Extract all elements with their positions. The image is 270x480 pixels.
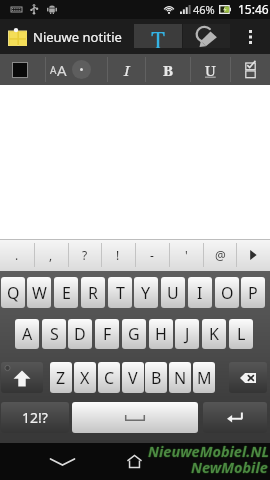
staticText: P	[248, 282, 258, 304]
button[interactable]: T	[108, 277, 132, 308]
button[interactable]: J	[175, 319, 199, 349]
staticText: T	[116, 282, 125, 304]
staticText: L	[237, 323, 246, 345]
button[interactable]: ,	[34, 239, 68, 271]
button[interactable]: O	[215, 277, 239, 308]
button[interactable]: U	[191, 54, 230, 85]
button[interactable]: T	[134, 24, 182, 48]
staticText: @	[215, 247, 226, 263]
staticText: Z	[56, 367, 66, 389]
button[interactable]: Q	[1, 277, 25, 308]
button[interactable]: P	[241, 277, 265, 308]
button[interactable]: F	[95, 319, 119, 349]
staticText: U	[167, 282, 179, 304]
button[interactable]: Enter	[203, 402, 267, 433]
staticText: K	[209, 323, 219, 345]
staticText: X	[80, 367, 90, 389]
button[interactable]: Symbols	[1, 402, 69, 433]
button[interactable]: Shift	[1, 362, 43, 393]
staticText: NewMobile	[191, 456, 268, 476]
button[interactable]: B	[145, 362, 167, 393]
button[interactable]: More symbols	[236, 239, 270, 271]
staticText: B	[163, 60, 174, 80]
button[interactable]: Space	[72, 402, 198, 433]
staticText: ,	[49, 247, 53, 263]
staticText: NieuweMobiel.NL	[147, 441, 268, 461]
button[interactable]: Nieuwe notitie	[8, 19, 128, 54]
button[interactable]: Z	[50, 362, 72, 393]
button[interactable]: H	[149, 319, 173, 349]
button[interactable]: A	[15, 319, 39, 349]
staticText: A	[22, 323, 33, 345]
staticText: F	[103, 323, 112, 345]
staticText: I	[124, 60, 130, 80]
staticText: U	[205, 60, 216, 80]
staticText: B	[151, 367, 162, 389]
staticText: NieuweMobiel.NL	[148, 442, 269, 462]
staticText: NieuweMobiel.NL	[148, 441, 269, 461]
staticText: '	[185, 247, 188, 263]
staticText: J	[185, 323, 190, 345]
button[interactable]: Backspace	[229, 362, 267, 393]
staticText: R	[88, 282, 98, 304]
button[interactable]: D	[68, 319, 92, 349]
button[interactable]: X	[74, 362, 96, 393]
staticText: V	[128, 367, 138, 389]
button[interactable]: G	[122, 319, 146, 349]
button[interactable]: Back	[44, 443, 80, 480]
button[interactable]: W	[27, 277, 51, 308]
button[interactable]: -	[135, 239, 169, 271]
button[interactable]: '	[169, 239, 203, 271]
staticText: O	[221, 282, 234, 304]
staticText: A	[57, 60, 67, 80]
staticText: Nieuwe notitie	[33, 28, 122, 46]
staticText: T	[151, 24, 166, 48]
button[interactable]: U	[161, 277, 185, 308]
staticText: C	[104, 367, 115, 389]
staticText: .	[15, 247, 19, 263]
button[interactable]: K	[202, 319, 226, 349]
button[interactable]: Home	[116, 443, 152, 480]
button[interactable]: S	[42, 319, 66, 349]
button[interactable]: @	[203, 239, 237, 271]
button[interactable]: L	[229, 319, 253, 349]
button[interactable]: M	[193, 362, 215, 393]
staticText: I	[197, 282, 203, 304]
button[interactable]: .	[0, 239, 34, 271]
button[interactable]: C	[98, 362, 120, 393]
staticText: G	[128, 323, 140, 345]
staticText: !	[116, 247, 120, 263]
button[interactable]: E	[54, 277, 78, 308]
button[interactable]: Text size	[46, 54, 107, 85]
staticText: ?	[82, 247, 88, 263]
staticText: 12!?	[22, 408, 48, 427]
staticText: M	[197, 367, 212, 389]
staticText: Y	[141, 282, 151, 304]
button[interactable]: B	[146, 54, 190, 85]
staticText: -	[150, 247, 154, 263]
button[interactable]: V	[122, 362, 144, 393]
button[interactable]: I	[108, 54, 145, 85]
staticText: H	[155, 323, 167, 345]
staticText: A	[50, 63, 57, 77]
button[interactable]: Drawing mode	[183, 24, 230, 48]
staticText: E	[62, 282, 71, 304]
button[interactable]: N	[169, 362, 191, 393]
staticText: NieuweMobiel.NL	[149, 441, 270, 461]
button[interactable]: ?	[68, 239, 102, 271]
staticText: NewMobile	[191, 457, 268, 477]
staticText: 46%	[193, 2, 215, 17]
staticText: NieuweMobiel.NL	[148, 440, 269, 460]
button[interactable]: Checklist	[231, 54, 270, 85]
button[interactable]: Text colour	[0, 54, 45, 85]
button[interactable]: R	[81, 277, 105, 308]
button[interactable]: !	[101, 239, 135, 271]
staticText: D	[74, 323, 86, 345]
button[interactable]: More options	[236, 19, 264, 54]
button[interactable]: I	[188, 277, 212, 308]
staticText: N	[174, 367, 187, 389]
staticText: NewMobile	[192, 457, 269, 477]
staticText: Q	[7, 282, 20, 304]
staticText: W	[32, 282, 47, 304]
button[interactable]: Y	[134, 277, 158, 308]
